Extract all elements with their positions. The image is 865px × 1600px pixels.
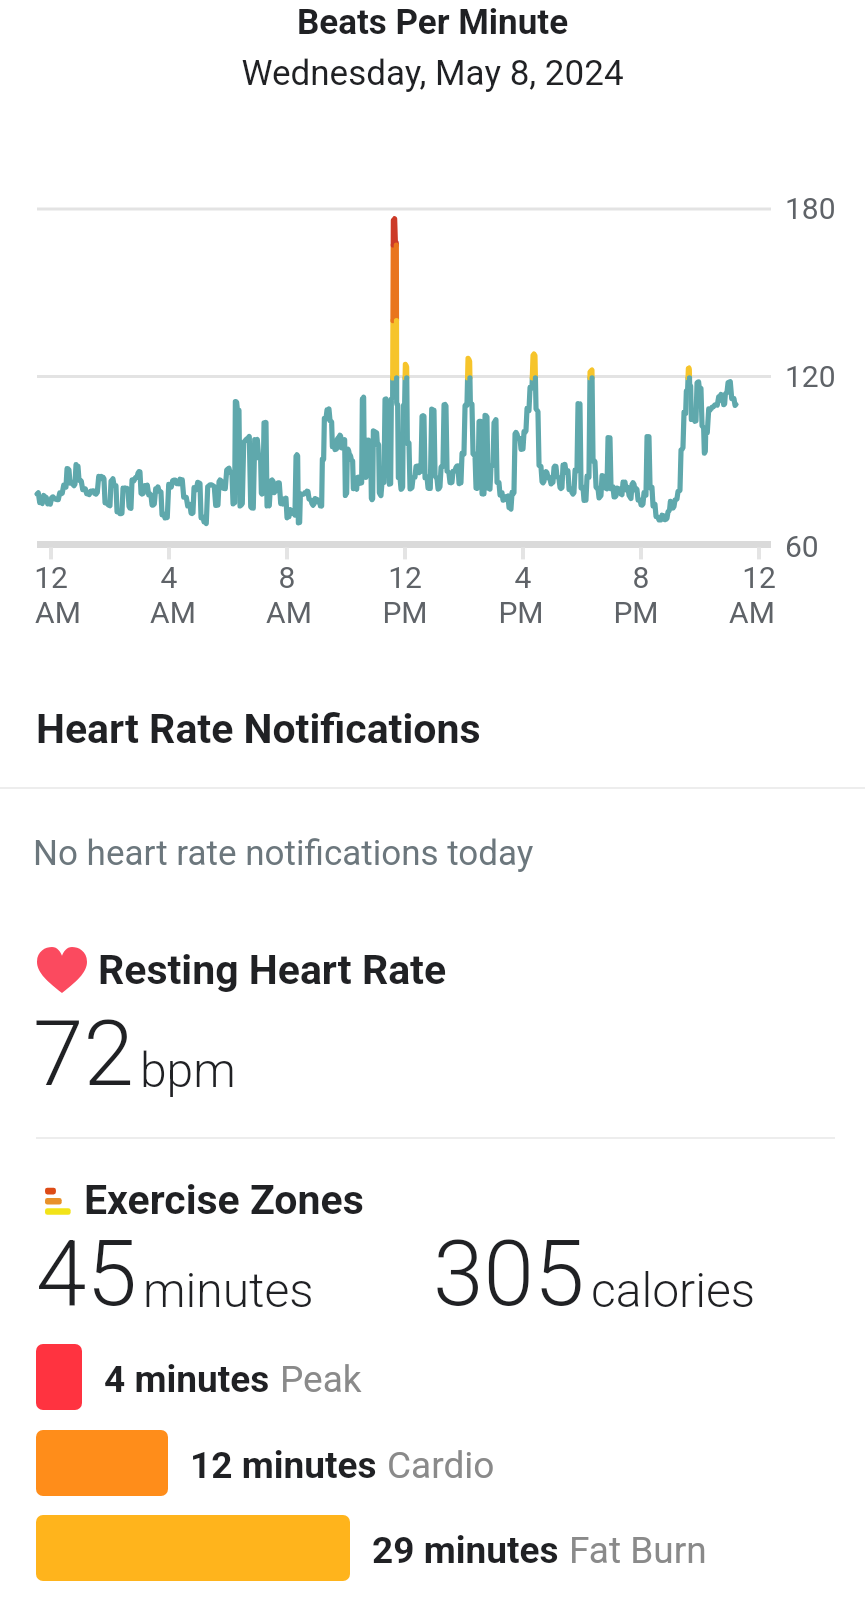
other: Exercise zones — [38, 1183, 70, 1217]
staticText: 120 — [785, 359, 836, 394]
staticText: AM — [13, 595, 103, 630]
staticText: 12 — [360, 560, 450, 595]
button[interactable]: Exercise zones — [38, 1176, 865, 1224]
staticText: AM — [128, 595, 218, 630]
staticText: Resting Heart Rate — [98, 946, 447, 994]
staticText: Exercise Zones — [84, 1176, 364, 1224]
staticText: AM — [707, 595, 797, 630]
staticText: 72 — [33, 1001, 134, 1108]
staticText: Peak — [280, 1358, 362, 1401]
staticText: Wednesday, May 8, 2024 — [0, 53, 865, 94]
staticText: 4 — [124, 560, 214, 595]
staticText: PM — [591, 595, 681, 630]
staticText: 45 — [36, 1221, 137, 1328]
staticText: 12 — [714, 560, 804, 595]
staticText: 29 minutes — [372, 1529, 559, 1572]
staticText: No heart rate notifications today — [33, 833, 534, 874]
button[interactable]: 4 minutes — [36, 1344, 865, 1410]
staticText: 305 — [433, 1221, 585, 1328]
staticText: Heart Rate Notifications — [36, 705, 481, 753]
staticText: PM — [360, 595, 450, 630]
staticText: calories — [591, 1262, 756, 1318]
staticText: 180 — [785, 191, 836, 226]
staticText: 4 — [478, 560, 568, 595]
staticText: AM — [244, 595, 334, 630]
staticText: 4 minutes — [104, 1358, 270, 1401]
staticText: PM — [476, 595, 566, 630]
staticText: 12 minutes — [190, 1444, 377, 1487]
staticText: Cardio — [387, 1444, 495, 1487]
staticText: bpm — [140, 1042, 236, 1098]
staticText: 12 — [6, 560, 96, 595]
button[interactable]: 12 minutes — [36, 1430, 865, 1496]
staticText: minutes — [143, 1262, 314, 1318]
staticText: 8 — [596, 560, 686, 595]
button[interactable]: Resting Heart Rate — [37, 946, 865, 994]
button[interactable]: 29 minutes — [36, 1515, 865, 1581]
staticText: Beats Per Minute — [0, 2, 865, 43]
staticText: 8 — [242, 560, 332, 595]
staticText: Fat Burn — [569, 1529, 707, 1572]
staticText: 60 — [785, 529, 819, 564]
